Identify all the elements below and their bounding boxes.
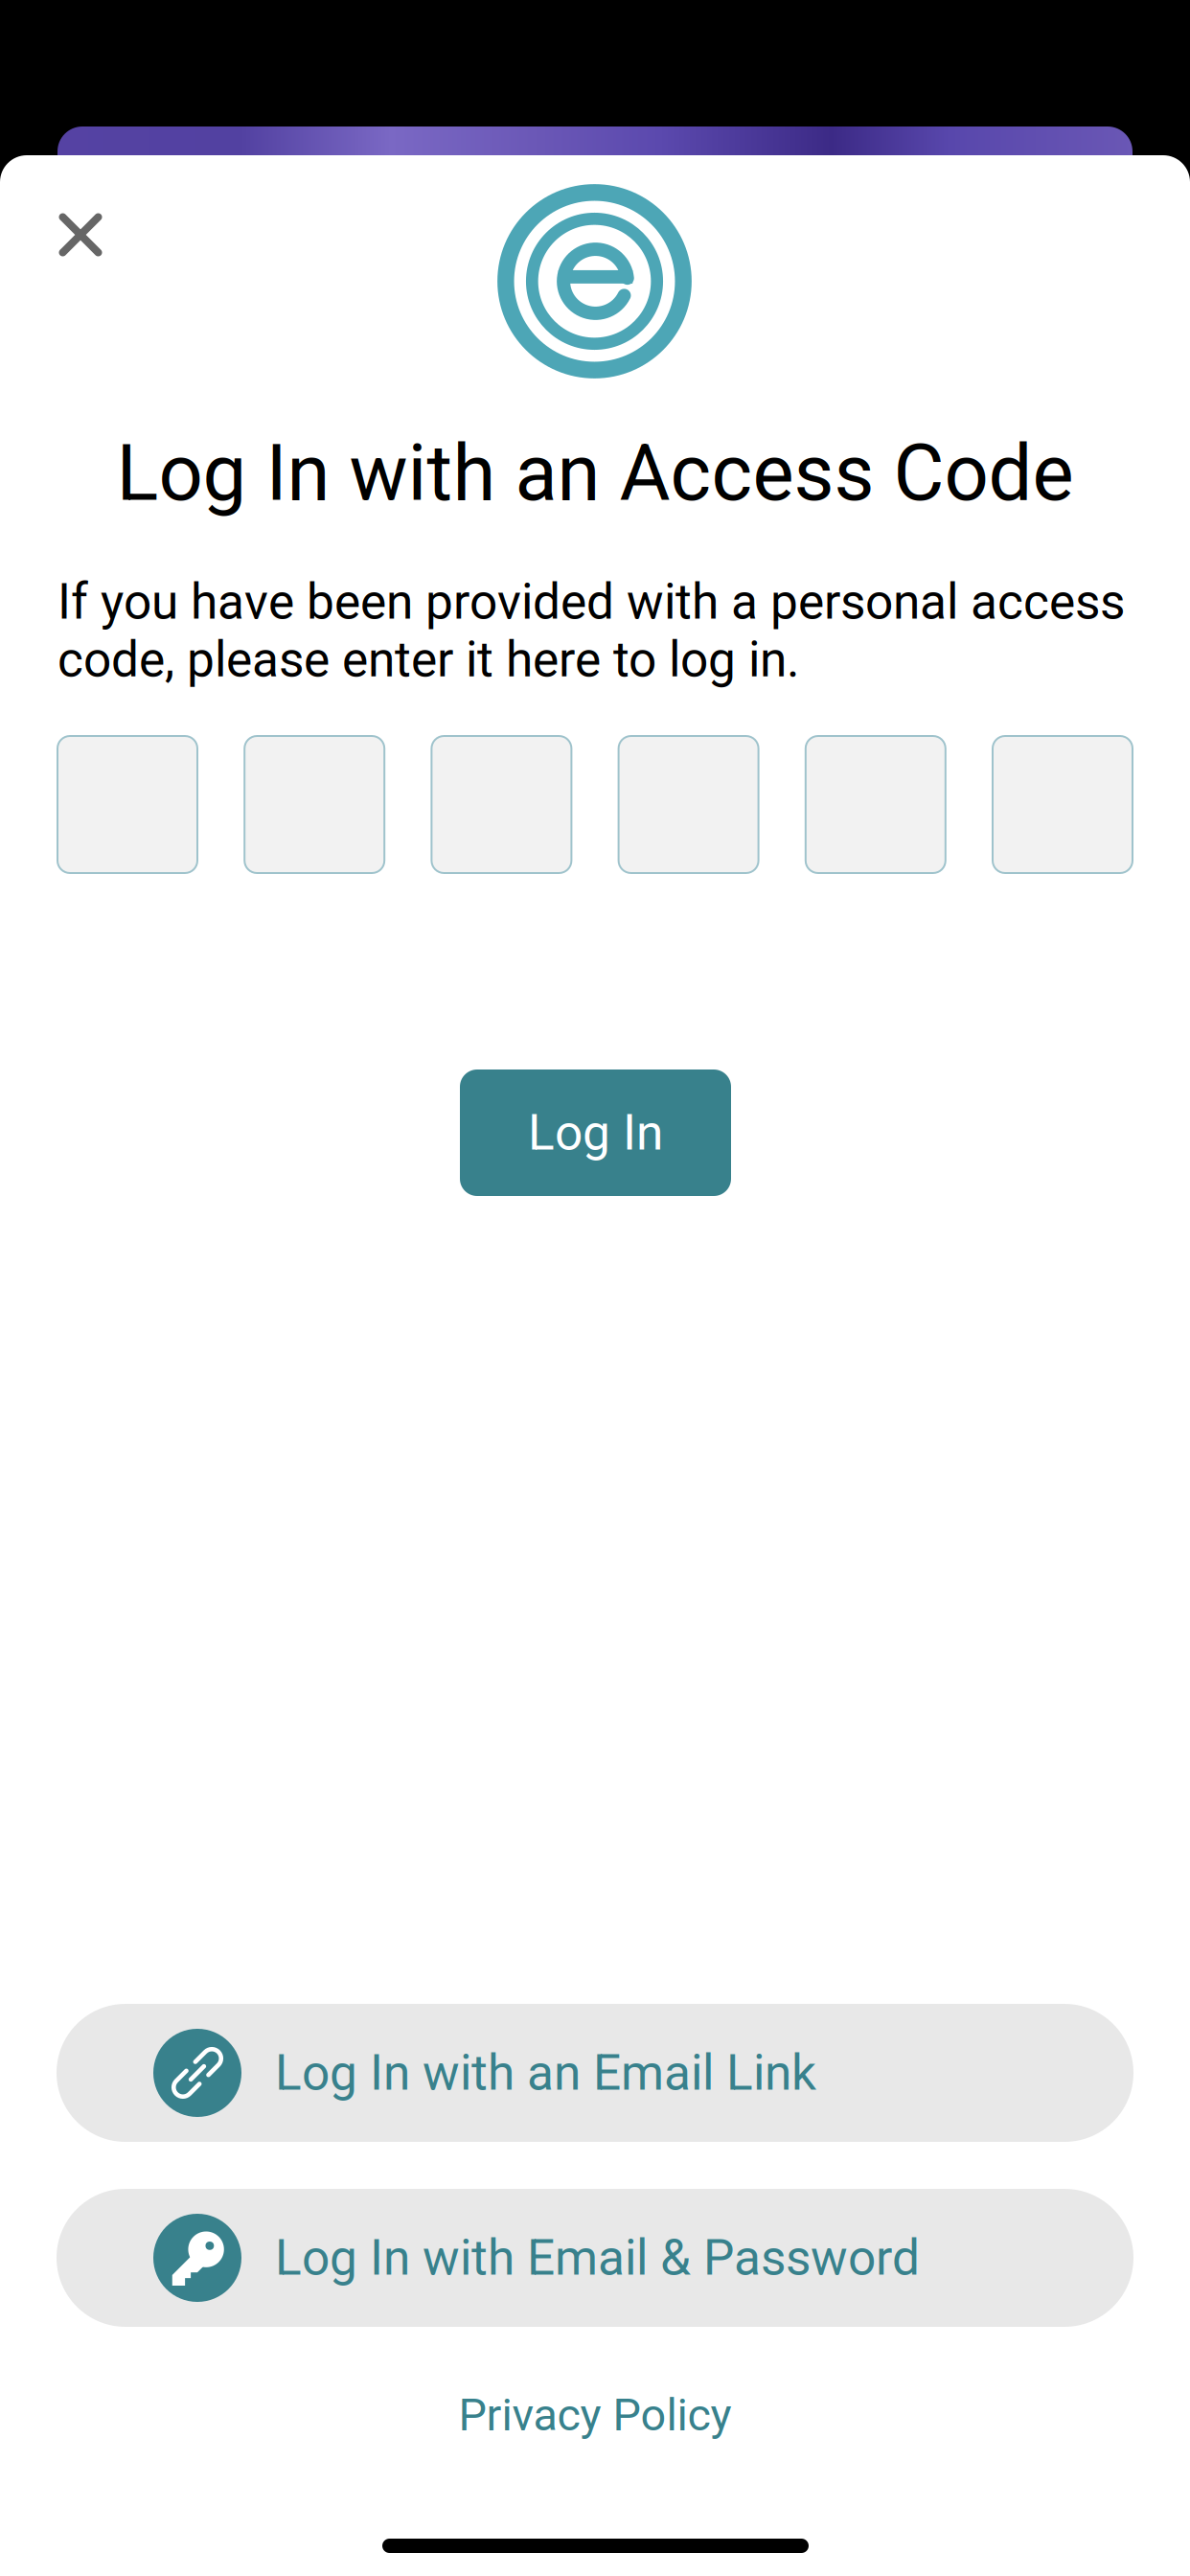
staticText: Log In with an Access Code bbox=[116, 427, 1074, 519]
button[interactable]: Privacy Policy bbox=[437, 2379, 753, 2451]
staticText: Privacy Policy bbox=[458, 2389, 732, 2441]
button[interactable]: Close bbox=[27, 181, 134, 288]
staticText: Log In bbox=[528, 1104, 663, 1162]
staticText: Log In with Email & Password bbox=[275, 2229, 920, 2287]
button[interactable]: Log In with an Email Link bbox=[57, 2004, 1133, 2142]
button[interactable]: Log In bbox=[460, 1069, 731, 1196]
button[interactable]: Log In with Email & Password bbox=[57, 2189, 1133, 2327]
staticText: Log In with an Email Link bbox=[275, 2044, 816, 2102]
staticText: If you have been provided with a persona… bbox=[57, 573, 1125, 688]
